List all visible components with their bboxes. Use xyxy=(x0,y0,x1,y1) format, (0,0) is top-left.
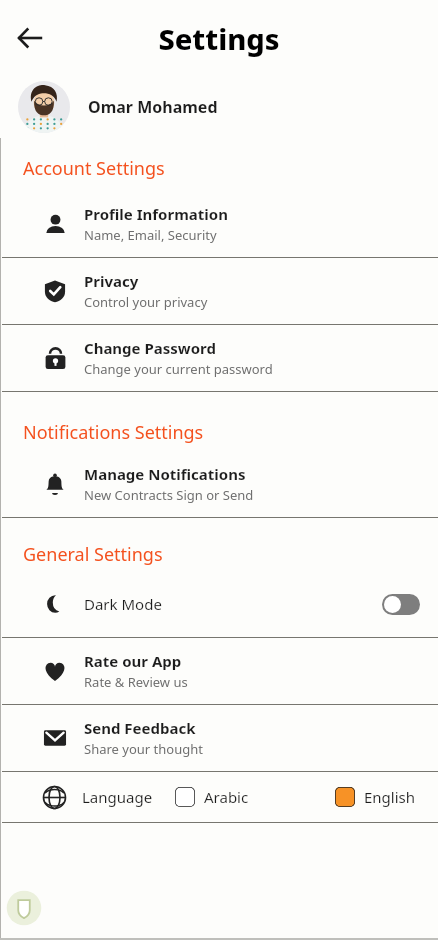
button[interactable]: Profile photo xyxy=(18,81,70,133)
staticText: Dark Mode xyxy=(84,594,162,614)
button[interactable]: Arabic xyxy=(175,787,249,807)
staticText: Settings xyxy=(158,19,280,58)
staticText: Notifications Settings xyxy=(23,420,204,445)
staticText: Arabic xyxy=(204,787,249,807)
button[interactable]: Rate our App xyxy=(2,638,438,704)
button[interactable]: Manage Notifications xyxy=(2,451,438,517)
staticText: Rate our App xyxy=(84,651,182,671)
button[interactable]: Dark Mode toggle xyxy=(382,594,420,615)
staticText: Omar Mohamed xyxy=(88,96,218,118)
button[interactable]: Profile Information xyxy=(2,191,438,257)
button[interactable]: Back xyxy=(8,16,52,60)
staticText: Rate & Review us xyxy=(84,673,188,691)
staticText: Profile Information xyxy=(84,204,228,224)
staticText: Privacy xyxy=(84,271,139,291)
staticText: Account Settings xyxy=(23,156,165,181)
staticText: English xyxy=(364,787,416,807)
staticText: Share your thought xyxy=(84,740,203,758)
button[interactable]: Dark Mode xyxy=(2,571,438,637)
button[interactable]: Change Password xyxy=(2,325,438,391)
staticText: Control your privacy xyxy=(84,293,208,311)
staticText: Change your current password xyxy=(84,360,273,378)
button[interactable]: English xyxy=(335,787,416,807)
button[interactable]: Privacy xyxy=(2,258,438,324)
button[interactable]: Send Feedback xyxy=(2,705,438,771)
staticText: Manage Notifications xyxy=(84,464,246,484)
button[interactable]: Profile photo xyxy=(0,76,438,138)
staticText: Name, Email, Security xyxy=(84,226,217,244)
staticText: Change Password xyxy=(84,338,216,358)
staticText: General Settings xyxy=(23,542,163,567)
staticText: Language xyxy=(82,787,153,807)
staticText: Send Feedback xyxy=(84,718,196,738)
staticText: New Contracts Sign or Send xyxy=(84,486,254,504)
